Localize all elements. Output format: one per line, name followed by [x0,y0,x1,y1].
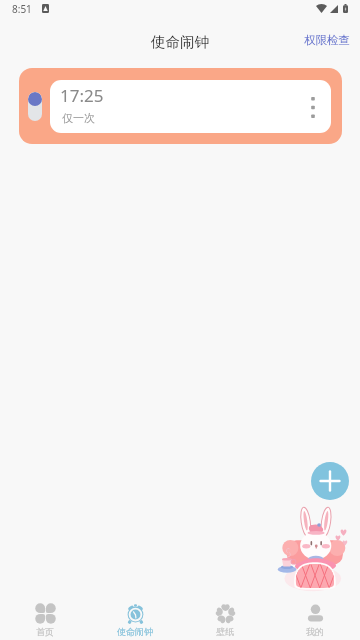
staticText: 8:51 [12,2,32,16]
button[interactable]: 首页 [0,596,90,640]
staticText: 权限检查 [304,33,350,47]
staticText: 首页 [36,626,54,637]
staticText: 壁纸 [216,626,234,637]
staticText: 我的 [306,626,324,637]
button[interactable]: Toggle alarm on or off [28,92,42,121]
button[interactable]: Add alarm [311,462,349,500]
button[interactable]: Toggle alarm on or off [19,68,342,144]
button[interactable]: 壁纸 [180,596,270,640]
button[interactable]: 我的 [270,596,360,640]
button[interactable]: More options [301,95,325,119]
staticText: 仅一次 [62,111,95,125]
staticText: 使命闹钟 [117,626,153,637]
button[interactable]: 使命闹钟 [90,596,180,640]
staticText: 17:25 [60,84,104,107]
button[interactable]: 权限检查 [294,28,360,54]
staticText: 使命闹钟 [151,33,209,51]
